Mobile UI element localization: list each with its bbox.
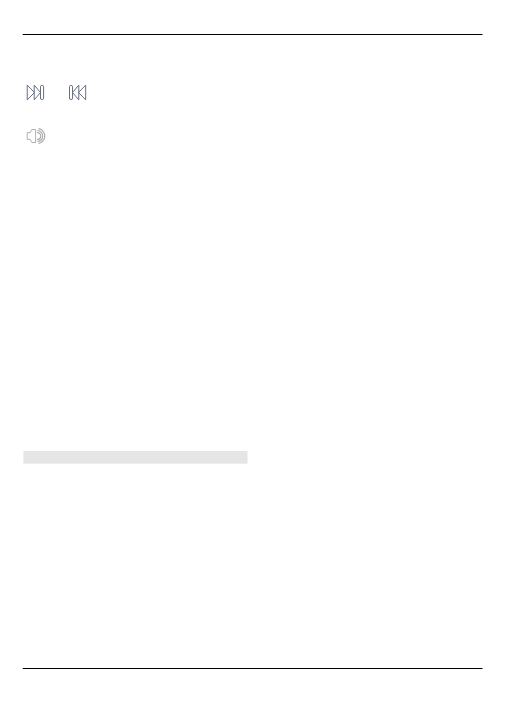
button[interactable]: Skip to next (25, 83, 46, 102)
button[interactable]: Volume (25, 127, 47, 146)
button[interactable]: Skip to previous (67, 83, 88, 102)
